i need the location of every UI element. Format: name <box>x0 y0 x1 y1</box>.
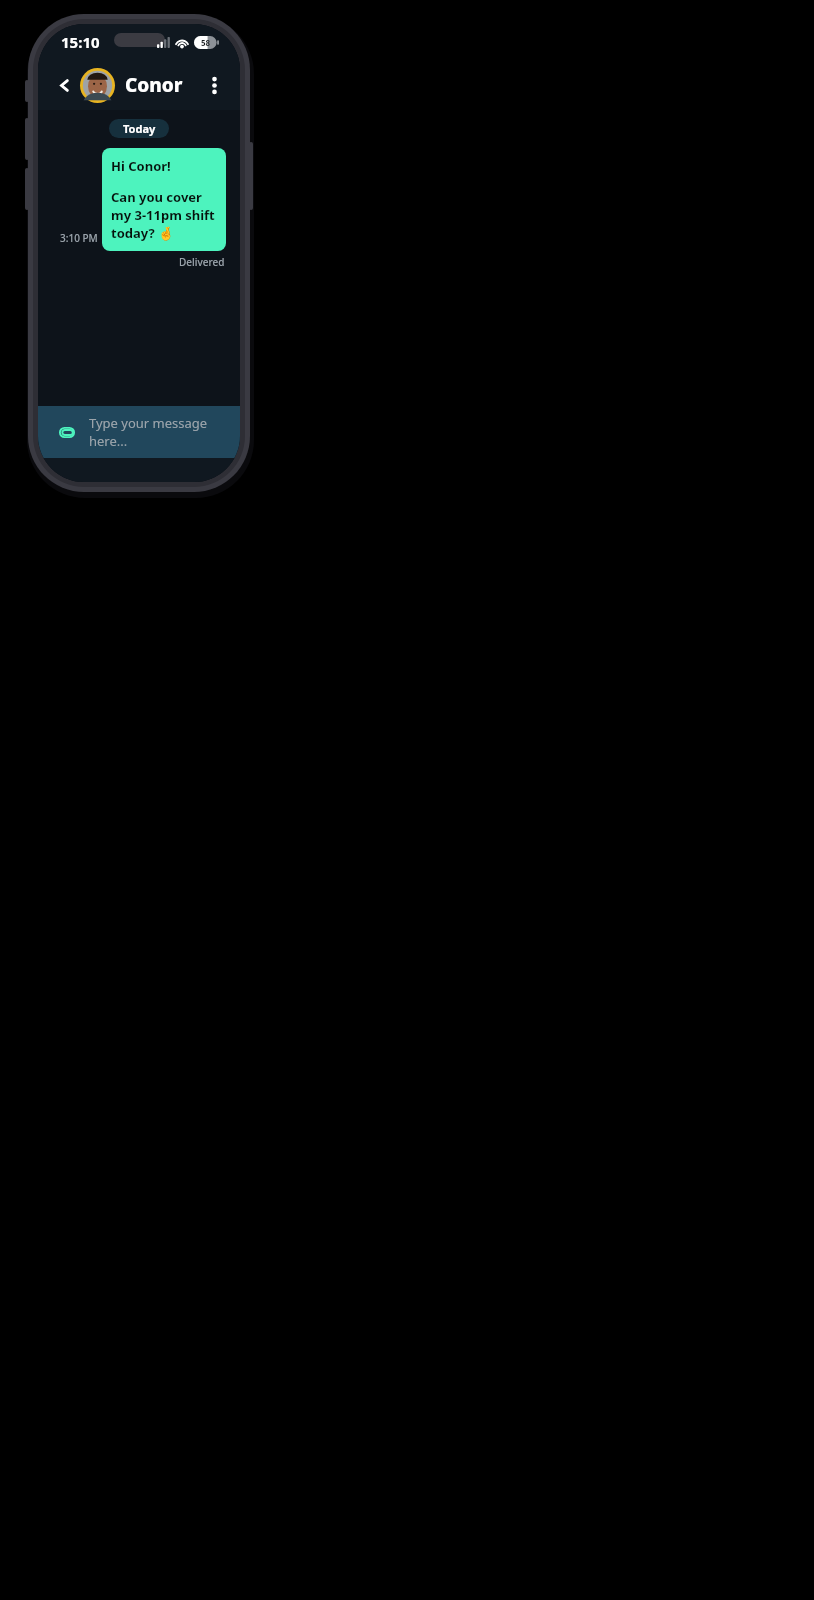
button[interactable]: Today <box>109 119 169 138</box>
staticText: 15:10 <box>61 32 100 52</box>
staticText: Hi Conor! <box>111 157 171 175</box>
button[interactable]: Hi Conor! <box>102 148 226 251</box>
staticText: Conor <box>125 72 183 98</box>
staticText: Type your message here... <box>89 414 222 450</box>
staticText: Today <box>123 121 156 136</box>
button[interactable]: Back <box>51 72 77 98</box>
staticText: Can you cover my 3-11pm shift today? 🤞 <box>111 188 217 242</box>
button[interactable]: More options <box>201 72 227 98</box>
staticText: 58 <box>201 37 211 48</box>
button[interactable]: Attach file <box>38 406 240 458</box>
staticText: Delivered <box>179 255 225 269</box>
button[interactable]: Attach file <box>56 421 78 443</box>
staticText: 3:10 PM <box>60 231 98 245</box>
